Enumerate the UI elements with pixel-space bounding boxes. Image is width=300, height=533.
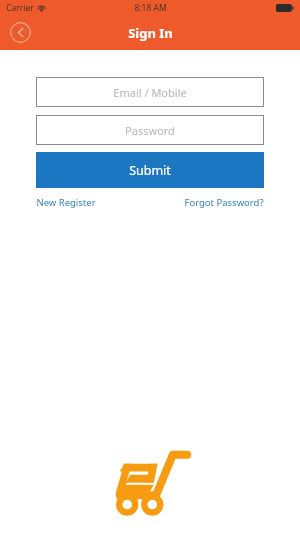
staticText: New Register bbox=[36, 196, 96, 209]
staticText: Email / Mobile bbox=[113, 85, 187, 100]
button[interactable]: Password bbox=[36, 115, 264, 145]
button[interactable]: Back bbox=[10, 22, 31, 43]
button[interactable]: Email / Mobile bbox=[36, 77, 264, 107]
button[interactable]: Forgot Password? bbox=[184, 196, 264, 209]
button[interactable]: New Register bbox=[36, 196, 96, 209]
staticText: Forgot Password? bbox=[184, 196, 264, 209]
staticText: Submit bbox=[129, 162, 171, 179]
staticText: 8:18 AM bbox=[134, 2, 167, 14]
staticText: Password bbox=[125, 123, 175, 138]
button[interactable]: Submit bbox=[36, 152, 264, 188]
staticText: Carrier bbox=[6, 2, 34, 14]
staticText: Sign In bbox=[128, 24, 173, 42]
